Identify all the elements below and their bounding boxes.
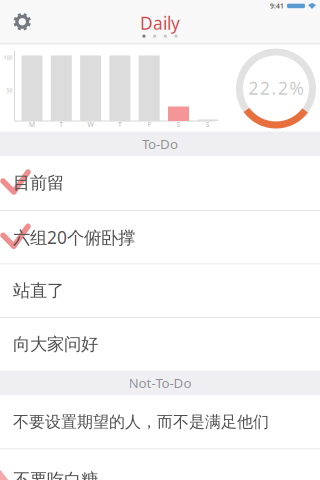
staticText: 不要设置期望的人，而不是满足他们 — [13, 412, 269, 432]
staticText: 六组20个俯卧撑 — [13, 226, 135, 249]
staticText: 22.2% — [248, 76, 303, 99]
staticText: 站直了 — [13, 280, 64, 301]
button[interactable]: 六组20个俯卧撑 — [0, 211, 320, 263]
staticText: M — [29, 120, 35, 129]
staticText: 不要吃白糖 — [13, 469, 98, 480]
staticText: Not-To-Do — [128, 374, 191, 392]
staticText: 50 — [6, 87, 12, 94]
staticText: Daily — [140, 11, 180, 34]
staticText: 向大家问好 — [13, 334, 98, 355]
button[interactable]: 向大家问好 — [0, 318, 320, 371]
staticText: T — [118, 120, 122, 129]
staticText: W — [88, 120, 94, 129]
staticText: F — [148, 120, 151, 129]
button[interactable]: Settings — [13, 13, 31, 30]
button[interactable]: 不要设置期望的人，而不是满足他们 — [0, 395, 320, 448]
button[interactable]: 目前留 — [0, 156, 320, 210]
button[interactable]: 不要吃白糖 — [0, 449, 320, 480]
staticText: T — [59, 120, 63, 129]
staticText: S — [206, 120, 210, 129]
staticText: 100 — [3, 54, 12, 61]
staticText: 目前留 — [13, 172, 64, 194]
staticText: S — [176, 120, 180, 129]
staticText: To-Do — [142, 135, 178, 153]
button[interactable]: 站直了 — [0, 264, 320, 317]
staticText: 9:41 — [270, 1, 284, 10]
